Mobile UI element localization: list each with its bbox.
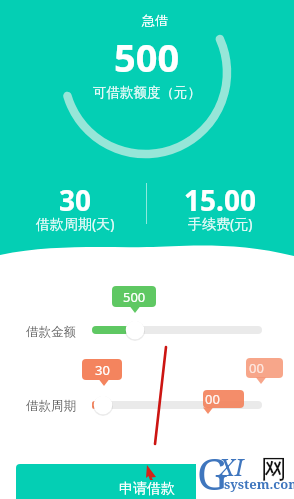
staticText: 30 xyxy=(95,361,110,379)
button[interactable]: 借款金额滑块 xyxy=(80,318,274,342)
staticText: 00 xyxy=(205,390,220,408)
staticText: XI xyxy=(219,450,244,483)
staticText: 急借 xyxy=(142,12,168,28)
staticText: 借款金额 xyxy=(26,324,76,340)
button[interactable]: 15.00 xyxy=(165,181,275,233)
staticText: 借款周期 xyxy=(26,398,76,414)
staticText: G xyxy=(197,444,228,491)
staticText: system.com xyxy=(224,475,294,493)
button[interactable]: 借款周期滑块 xyxy=(80,393,274,417)
staticText: 借款周期(天) xyxy=(36,214,115,233)
button[interactable]: 30 xyxy=(20,181,130,233)
staticText: 手续费(元) xyxy=(188,214,253,233)
button[interactable]: 申请借款 xyxy=(16,464,278,499)
staticText: 500 xyxy=(114,31,180,83)
button[interactable]: 急借 xyxy=(142,12,168,28)
staticText: 500 xyxy=(123,288,146,306)
staticText: 网 xyxy=(261,453,287,486)
staticText: 可借款额度（元） xyxy=(93,84,201,101)
staticText: 30 xyxy=(59,181,92,219)
staticText: 申请借款 xyxy=(119,480,175,498)
staticText: 15.00 xyxy=(184,181,256,219)
staticText: 00 xyxy=(249,359,264,377)
